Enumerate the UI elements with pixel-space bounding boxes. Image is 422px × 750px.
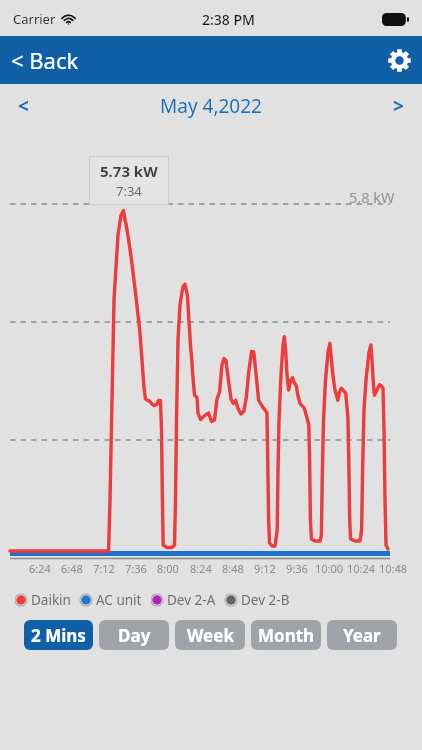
staticText: 9:12 [254, 561, 276, 576]
staticText: 6:48 [61, 561, 83, 576]
staticText: 5.73 kW [100, 161, 158, 181]
button[interactable]: Next day [375, 83, 422, 129]
button[interactable]: Previous day [0, 83, 47, 129]
button[interactable]: Dev 2-B [224, 588, 290, 612]
staticText: Year [343, 624, 381, 647]
staticText: 7:36 [125, 561, 147, 576]
staticText: 2 Mins [31, 624, 86, 647]
staticText: May 4,2022 [160, 93, 262, 119]
staticText: 5.8 kW [349, 187, 395, 207]
button[interactable]: Dev 2-A [150, 588, 216, 612]
button[interactable]: Settings [376, 39, 422, 82]
staticText: > [393, 93, 404, 119]
button[interactable]: Week [175, 620, 245, 650]
staticText: 8:48 [222, 561, 244, 576]
staticText: < [18, 93, 29, 119]
staticText: 9:36 [286, 561, 308, 576]
staticText: < Back [11, 45, 79, 75]
button[interactable]: AC unit [79, 588, 142, 612]
staticText: Dev 2-B [241, 591, 290, 609]
staticText: 7:34 [116, 182, 142, 200]
staticText: 10:48 [379, 561, 408, 576]
staticText: Daikin [31, 591, 71, 609]
staticText: 7:12 [93, 561, 115, 576]
staticText: Day [118, 624, 151, 647]
button[interactable]: Month [251, 620, 321, 650]
staticText: Dev 2-A [167, 591, 216, 609]
staticText: 8:24 [190, 561, 212, 576]
staticText: 2:38 PM [202, 10, 255, 29]
staticText: 10:24 [347, 561, 376, 576]
staticText: 8:00 [157, 561, 179, 576]
button[interactable]: < Back [0, 36, 93, 84]
staticText: Month [258, 624, 315, 647]
staticText: Carrier [13, 10, 56, 28]
staticText: AC unit [96, 591, 142, 609]
button[interactable]: 2 Mins [24, 620, 93, 650]
button[interactable]: Daikin [14, 588, 71, 612]
staticText: 6:24 [29, 561, 51, 576]
staticText: Week [187, 624, 234, 647]
staticText: 10:00 [315, 561, 344, 576]
button[interactable]: Day [99, 620, 169, 650]
button[interactable]: Year [327, 620, 397, 650]
